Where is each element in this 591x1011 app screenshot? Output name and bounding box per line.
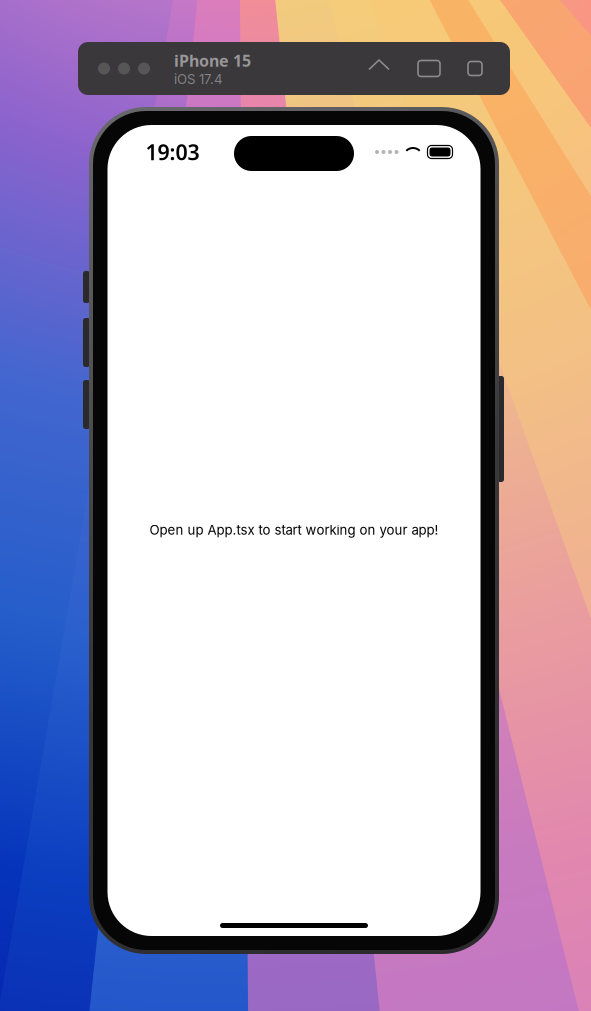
staticText: Open up App.tsx to start working on your…	[149, 522, 438, 538]
staticText: 19:03	[145, 138, 199, 166]
button[interactable]: Rotate	[468, 61, 482, 75]
button[interactable]: Home	[368, 58, 390, 78]
button[interactable]: Screenshot	[418, 60, 440, 76]
staticText: iPhone 15	[174, 50, 251, 71]
staticText: iOS 17.4	[174, 71, 223, 87]
